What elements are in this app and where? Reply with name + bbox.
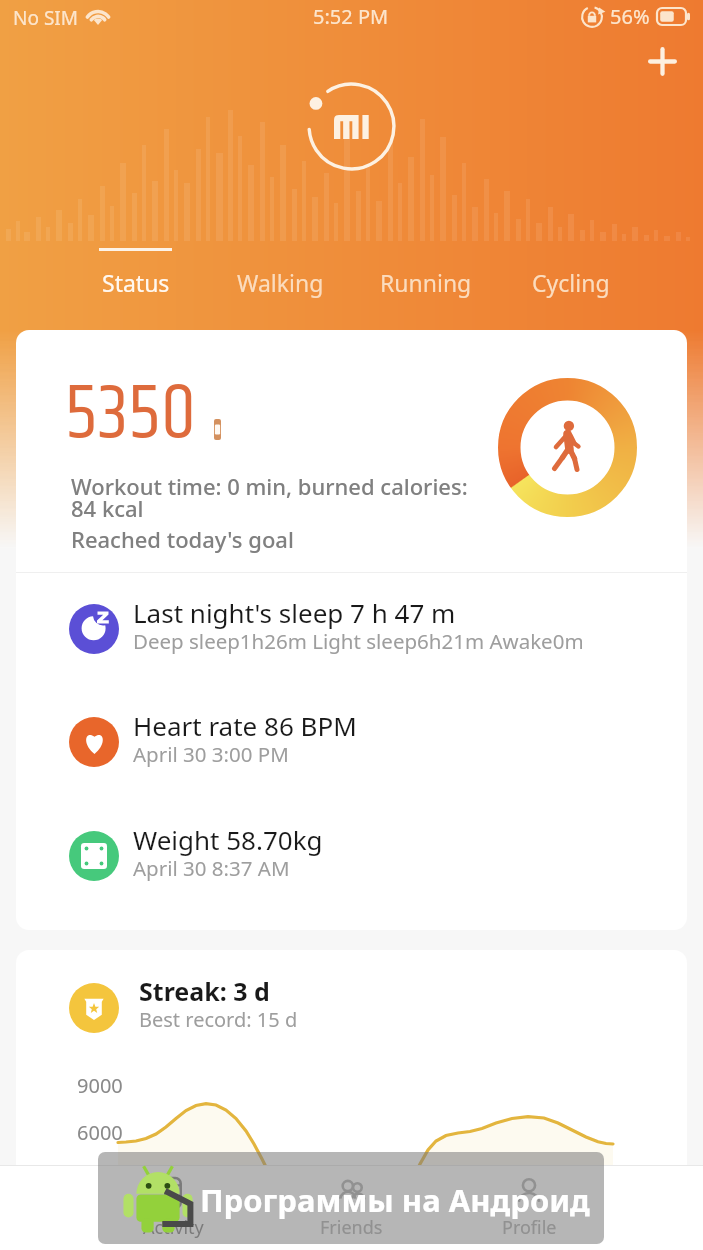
- staticText: Best record: 15 d: [139, 1006, 298, 1033]
- button[interactable]: Heart rate 86 BPM: [16, 717, 687, 767]
- staticText: Last night's sleep 7 h 47 m: [133, 595, 456, 630]
- staticText: Activity: [143, 1215, 204, 1240]
- button[interactable]: Status: [63, 248, 208, 298]
- staticText: Workout time: 0 min, burned calories: 84…: [71, 471, 468, 523]
- staticText: 6000: [77, 1119, 123, 1146]
- staticText: No SIM: [13, 5, 78, 31]
- button[interactable]: Cycling: [498, 248, 643, 298]
- button[interactable]: Weight 58.70kg: [16, 831, 687, 881]
- staticText: Status: [102, 267, 170, 298]
- staticText: Friends: [320, 1215, 383, 1240]
- staticText: Deep sleep1h26m Light sleep6h21m Awake0m: [133, 627, 584, 655]
- staticText: Weight 58.70kg: [133, 822, 323, 857]
- staticText: Running: [380, 267, 472, 298]
- staticText: Walking: [237, 267, 324, 298]
- button[interactable]: Running: [353, 248, 498, 298]
- staticText: April 30 3:00 PM: [133, 740, 289, 768]
- button[interactable]: Walking: [208, 248, 353, 298]
- staticText: April 30 8:37 AM: [133, 854, 290, 882]
- button[interactable]: Last night's sleep 7 h 47 m: [16, 604, 687, 654]
- staticText: 56%: [610, 3, 650, 30]
- button[interactable]: Activity: [84, 1177, 262, 1240]
- staticText: Streak: 3 d: [139, 974, 270, 1008]
- staticText: Heart rate 86 BPM: [133, 708, 357, 743]
- button[interactable]: Add: [636, 35, 689, 88]
- staticText: Cycling: [532, 267, 610, 298]
- staticText: Программы на Андроид: [200, 1179, 590, 1221]
- staticText: 5:52 PM: [313, 3, 389, 30]
- staticText: 5350: [65, 356, 196, 475]
- staticText: Reached today's goal: [71, 524, 294, 554]
- staticText: 9000: [77, 1072, 123, 1099]
- staticText: Profile: [502, 1215, 557, 1240]
- button[interactable]: Profile: [440, 1177, 618, 1240]
- button[interactable]: Friends: [262, 1177, 440, 1240]
